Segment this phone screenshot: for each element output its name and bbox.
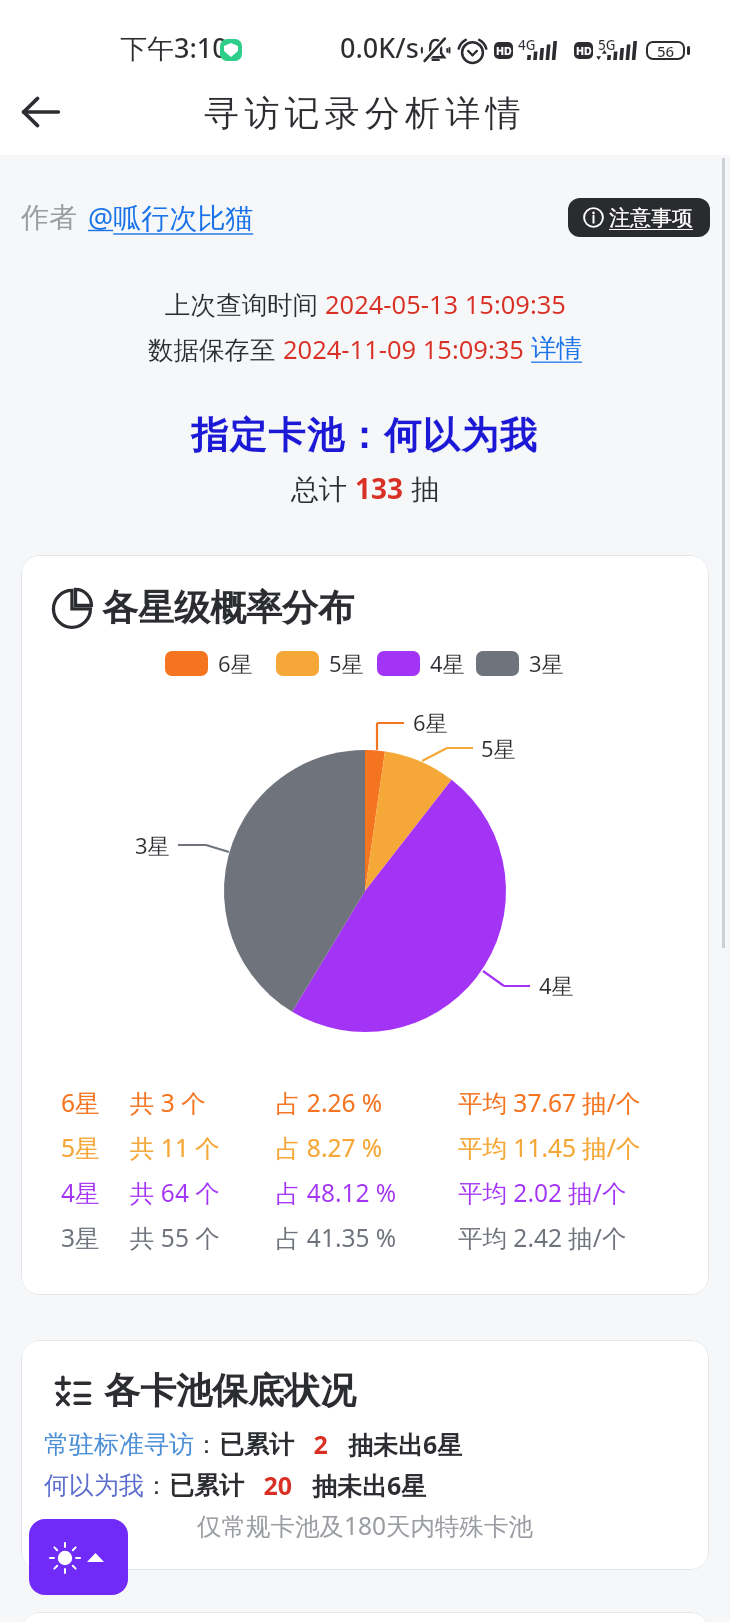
staticText: 作者 [21,200,77,235]
staticText: 平均 2.42 抽/个 [458,1221,627,1254]
button[interactable]: Back [10,82,70,142]
staticText: 指定卡池：何以为我 [191,412,539,459]
staticText: 平均 2.02 抽/个 [458,1176,627,1209]
staticText: 已累计 [219,1429,294,1460]
staticText: 56 [657,41,675,60]
staticText: 共 55 个 [130,1221,220,1254]
staticText: 3星 [529,648,564,678]
staticText: 各星级概率分布 [102,585,354,630]
staticText: 仅常规卡池及180天内特殊卡池 [197,1509,534,1542]
staticText: 平均 11.45 抽/个 [458,1131,641,1164]
staticText: 共 3 个 [130,1086,206,1119]
staticText: 常驻标准寻访 [44,1429,194,1460]
staticText: 已累计 [169,1470,244,1501]
staticText: 数据保存至 [148,332,283,367]
staticText: 5星 [61,1131,100,1164]
staticText: 占 48.12 % [276,1176,397,1209]
staticText: 6星 [218,648,253,678]
staticText: 抽未出6星 [348,1427,463,1461]
staticText: 详情 [531,332,582,364]
staticText: HD [576,44,592,58]
staticText: 注意事项 [609,205,693,231]
button[interactable]: Brightness [29,1519,128,1595]
staticText: 5G [598,36,616,54]
button[interactable]: 注意事项 [568,198,710,237]
staticText: @呱行次比猫 [88,198,254,236]
staticText: 4星 [61,1176,100,1209]
staticText: 6星 [61,1086,100,1119]
staticText: 0.0K/s [340,29,419,66]
staticText: 4星 [430,648,465,678]
staticText: 共 11 个 [130,1131,220,1164]
staticText: 5星 [329,648,364,678]
staticText: 总计 [291,469,355,507]
staticText: 抽 [404,469,440,507]
staticText: ： [144,1470,169,1501]
staticText: 2024-05-13 15:09:35 [325,287,566,322]
staticText: 20 [244,1468,312,1502]
staticText: 下午3:10 [120,29,228,66]
staticText: 各卡池保底状况 [104,1368,356,1413]
staticText: ： [194,1429,219,1460]
staticText: 2024-11-09 15:09:35 [283,332,524,367]
staticText: 平均 37.67 抽/个 [458,1086,641,1119]
staticText: 占 8.27 % [276,1131,383,1164]
staticText: 共 64 个 [130,1176,220,1209]
staticText: 占 2.26 % [276,1086,383,1119]
staticText: 上次查询时间 [165,287,325,322]
staticText: 何以为我 [44,1470,144,1501]
staticText: HD [496,44,512,58]
staticText: 占 41.35 % [276,1221,397,1254]
staticText: 寻访记录分析详情 [204,91,526,135]
staticText: 抽未出6星 [312,1468,427,1502]
staticText: 3星 [61,1221,100,1254]
staticText: 5星 [481,733,516,763]
staticText: 4G [518,36,536,54]
staticText: 6星 [413,707,448,737]
staticText: 133 [355,469,404,507]
staticText: 3星 [135,830,170,860]
staticText: 4星 [539,970,574,1000]
staticText: 2 [294,1427,348,1461]
